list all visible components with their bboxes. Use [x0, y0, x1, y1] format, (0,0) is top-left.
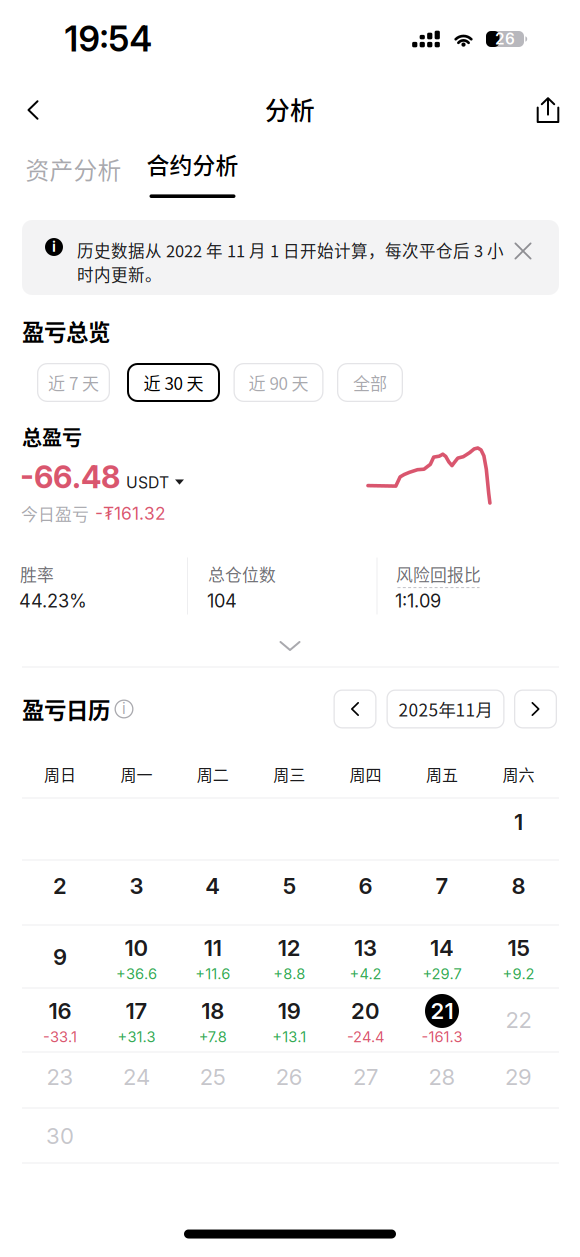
button[interactable]: Previous month	[333, 689, 376, 728]
staticText: 21	[430, 998, 453, 1024]
button[interactable]: 资产分析	[13, 146, 133, 192]
staticText: -161.3	[421, 1028, 462, 1046]
staticText: 资产分析	[25, 152, 121, 186]
button[interactable]: 6	[331, 869, 401, 903]
staticText: +36.6	[116, 965, 157, 983]
staticText: USDT	[126, 473, 169, 492]
button[interactable]: Close	[506, 234, 540, 268]
staticText: 3	[129, 873, 143, 899]
staticText: 29	[505, 1064, 532, 1090]
staticText: 周三	[273, 762, 305, 786]
staticText: 周一	[120, 762, 152, 786]
button[interactable]: 13	[331, 931, 401, 983]
staticText: +9.2	[502, 965, 534, 983]
staticText: 2	[53, 873, 67, 899]
button[interactable]: 2025年11月	[386, 689, 504, 728]
button[interactable]: 18	[178, 994, 248, 1046]
button[interactable]: 20	[331, 994, 401, 1046]
button[interactable]: Expand	[258, 626, 322, 666]
staticText: -₮161.32	[95, 503, 166, 524]
staticText: 盈亏总览	[22, 315, 110, 347]
button[interactable]: 24	[101, 1060, 171, 1094]
button[interactable]: 全部	[337, 363, 403, 402]
staticText: +13.1	[272, 1028, 306, 1046]
staticText: i	[122, 699, 126, 718]
staticText: 2025年11月	[398, 696, 492, 722]
button[interactable]: 2	[25, 869, 95, 903]
staticText: 今日盈亏	[21, 501, 89, 526]
staticText: 22	[505, 1007, 531, 1033]
button[interactable]: 3	[101, 869, 171, 903]
staticText: 26	[276, 1064, 303, 1090]
button[interactable]: 29	[483, 1060, 553, 1094]
staticText: 44.23%	[19, 590, 87, 612]
staticText: 分析	[265, 91, 315, 127]
button[interactable]: 4	[178, 869, 248, 903]
button[interactable]: 近 90 天	[233, 363, 323, 402]
staticText: 11	[204, 935, 222, 961]
staticText: 20	[351, 998, 380, 1024]
staticText: 总盈亏	[22, 422, 82, 451]
staticText: 盈亏日历	[22, 693, 110, 725]
button[interactable]: 14	[407, 931, 477, 983]
staticText: 近 30 天	[143, 370, 203, 395]
button[interactable]: Share	[523, 85, 573, 135]
staticText: 总仓位数	[208, 562, 276, 586]
button[interactable]: 27	[331, 1060, 401, 1094]
staticText: 13	[354, 935, 377, 961]
staticText: 10	[124, 935, 148, 961]
button[interactable]: 17	[101, 994, 171, 1046]
staticText: 全部	[353, 370, 387, 395]
button[interactable]: 7	[407, 869, 477, 903]
button[interactable]: 8	[483, 869, 553, 903]
staticText: 7	[435, 873, 448, 899]
button[interactable]: 9	[25, 940, 95, 974]
staticText: 12	[278, 935, 301, 961]
staticText: 17	[125, 998, 147, 1024]
button[interactable]: 28	[407, 1060, 477, 1094]
button[interactable]: Next month	[514, 689, 557, 728]
button[interactable]: 16	[25, 994, 95, 1046]
button[interactable]: 25	[178, 1060, 248, 1094]
button[interactable]: 合约分析	[132, 146, 252, 198]
button[interactable]: 21	[407, 994, 477, 1046]
staticText: 周日	[44, 762, 76, 786]
staticText: 1:1.09	[395, 590, 441, 612]
button[interactable]: 11	[178, 931, 248, 983]
button[interactable]: Back	[8, 85, 58, 135]
staticText: 5	[283, 873, 296, 899]
staticText: 合约分析	[146, 147, 238, 180]
staticText: -33.1	[43, 1028, 77, 1046]
staticText: 19	[278, 998, 301, 1024]
staticText: 历史数据从 2022 年 11 月 1 日开始计算，每次平仓后 3 小 时内更新…	[77, 238, 504, 286]
button[interactable]: 5	[254, 869, 324, 903]
button[interactable]: 23	[25, 1060, 95, 1094]
button[interactable]: 26	[254, 1060, 324, 1094]
staticText: 19:54	[64, 18, 152, 60]
button[interactable]: 12	[254, 931, 324, 983]
button[interactable]: 10	[101, 931, 171, 983]
button[interactable]: 近 7 天	[37, 363, 110, 402]
button[interactable]: 30	[25, 1119, 95, 1153]
button[interactable]: 19	[254, 994, 324, 1046]
staticText: 23	[46, 1064, 73, 1090]
staticText: 25	[200, 1064, 226, 1090]
staticText: 周二	[197, 762, 229, 786]
staticText: 14	[430, 935, 454, 961]
staticText: 30	[46, 1123, 74, 1149]
staticText: +4.2	[350, 965, 382, 983]
staticText: 周六	[502, 762, 534, 786]
staticText: 27	[353, 1064, 378, 1090]
button[interactable]: 15	[483, 931, 553, 983]
button[interactable]: 近 30 天	[127, 363, 220, 402]
staticText: 6	[359, 873, 373, 899]
staticText: 近 7 天	[48, 370, 99, 395]
button[interactable]: 22	[483, 1003, 553, 1037]
button[interactable]: 1	[483, 805, 553, 839]
